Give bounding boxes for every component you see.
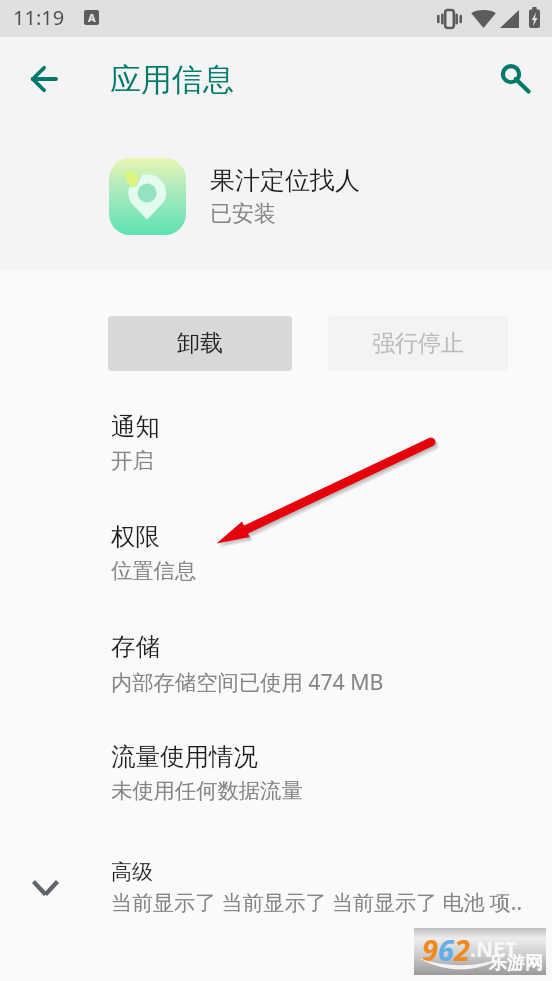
staticText: 乐游网 — [489, 952, 543, 975]
button[interactable]: 权限 — [0, 510, 552, 620]
staticText: 11:19 — [13, 4, 65, 31]
button[interactable]: 流量使用情况 — [0, 730, 552, 840]
staticText: 9 — [422, 930, 438, 969]
staticText: 强行停止 — [372, 329, 464, 358]
staticText: 当前显示了 当前显示了 当前显示了 电池 项.. — [111, 888, 523, 917]
staticText: 高级 — [111, 859, 153, 885]
staticText: 权限 — [111, 521, 160, 552]
staticText: 2 — [454, 930, 470, 969]
staticText: 已安装 — [210, 200, 276, 228]
staticText: 未使用任何数据流量 — [111, 777, 303, 804]
staticText: 流量使用情况 — [111, 741, 258, 772]
staticText: .NET — [470, 935, 517, 964]
button[interactable]: 强行停止 — [328, 316, 508, 371]
button[interactable]: Back — [21, 56, 67, 102]
button[interactable]: 存储 — [0, 620, 552, 730]
staticText: A — [88, 10, 96, 25]
staticText: 6 — [438, 930, 454, 969]
staticText: 果汁定位找人 — [210, 165, 360, 196]
button[interactable]: Search — [497, 57, 541, 101]
staticText: 开启 — [111, 447, 154, 474]
button[interactable]: 高级 — [0, 840, 552, 932]
button[interactable]: 通知 — [0, 400, 552, 510]
button[interactable]: 卸载 — [108, 316, 292, 371]
staticText: 卸载 — [177, 329, 223, 358]
staticText: 应用信息 — [110, 60, 234, 99]
staticText: 内部存储空间已使用 474 MB — [111, 667, 384, 696]
staticText: 通知 — [111, 411, 160, 442]
staticText: 位置信息 — [111, 557, 197, 584]
staticText: 存储 — [111, 631, 160, 662]
